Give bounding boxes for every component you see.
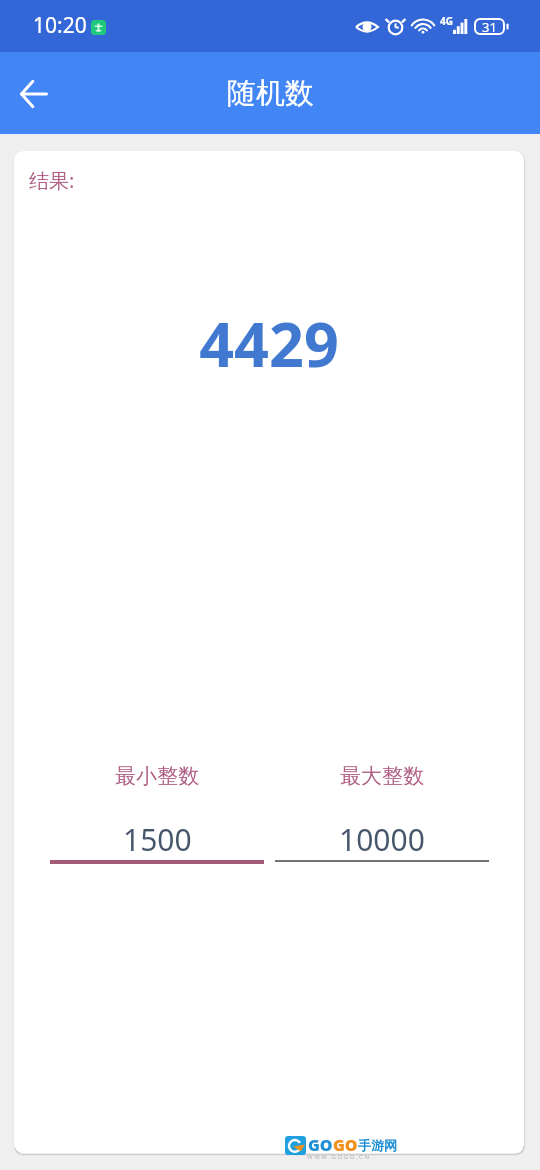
staticText: 10000 [339,819,425,860]
staticText: 4G [440,14,453,28]
button[interactable]: 最小整数 [50,763,264,864]
staticText: 随机数 [227,75,314,112]
staticText: 31 [482,18,497,35]
staticText: 1500 [123,819,192,860]
staticText: 手游网 [358,1137,397,1153]
staticText: GO [333,1134,358,1156]
staticText: 结果: [29,167,75,194]
staticText: 4429 [14,302,524,385]
staticText: W W W . G O G O . C N [307,1153,370,1161]
staticText: GO [308,1134,333,1156]
button[interactable]: Back [6,65,62,121]
staticText: 最小整数 [115,763,199,789]
button[interactable]: 最大整数 [275,763,489,862]
staticText: 最大整数 [340,763,424,789]
staticText: 10:20 [33,11,87,40]
